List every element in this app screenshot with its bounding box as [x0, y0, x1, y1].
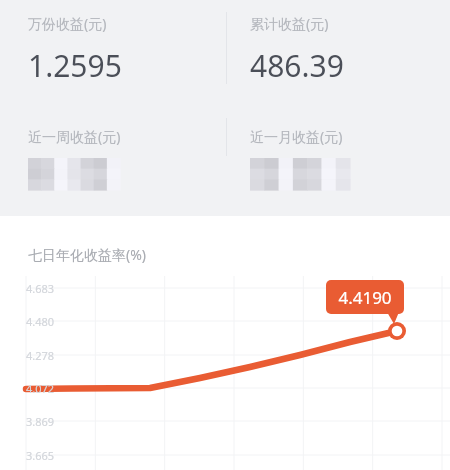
staticText: 近一月收益(元) [250, 127, 343, 146]
staticText: 1.2595 [28, 45, 122, 86]
other: 七日年化收益率折线图 [0, 216, 450, 470]
staticText: 4.683 [26, 281, 55, 296]
staticText: 近一周收益(元) [28, 127, 121, 146]
staticText: 3.869 [26, 414, 55, 429]
staticText: 486.39 [250, 45, 344, 86]
staticText: 累计收益(元) [250, 14, 329, 33]
button[interactable]: 万份收益(元) [0, 0, 226, 105]
button[interactable]: 近一月收益(元) [227, 110, 450, 210]
staticText: 万份收益(元) [28, 14, 107, 33]
staticText: 4.072 [26, 381, 55, 396]
staticText: 4.278 [26, 348, 55, 363]
staticText: 3.665 [26, 448, 55, 463]
staticText: 4.4190 [338, 286, 392, 309]
button[interactable]: 近一周收益(元) [0, 110, 226, 210]
staticText: 七日年化收益率(%) [28, 245, 147, 264]
staticText: 4.480 [26, 314, 55, 329]
button[interactable]: 累计收益(元) [227, 0, 450, 105]
button[interactable]: 4.4190 [326, 280, 404, 314]
